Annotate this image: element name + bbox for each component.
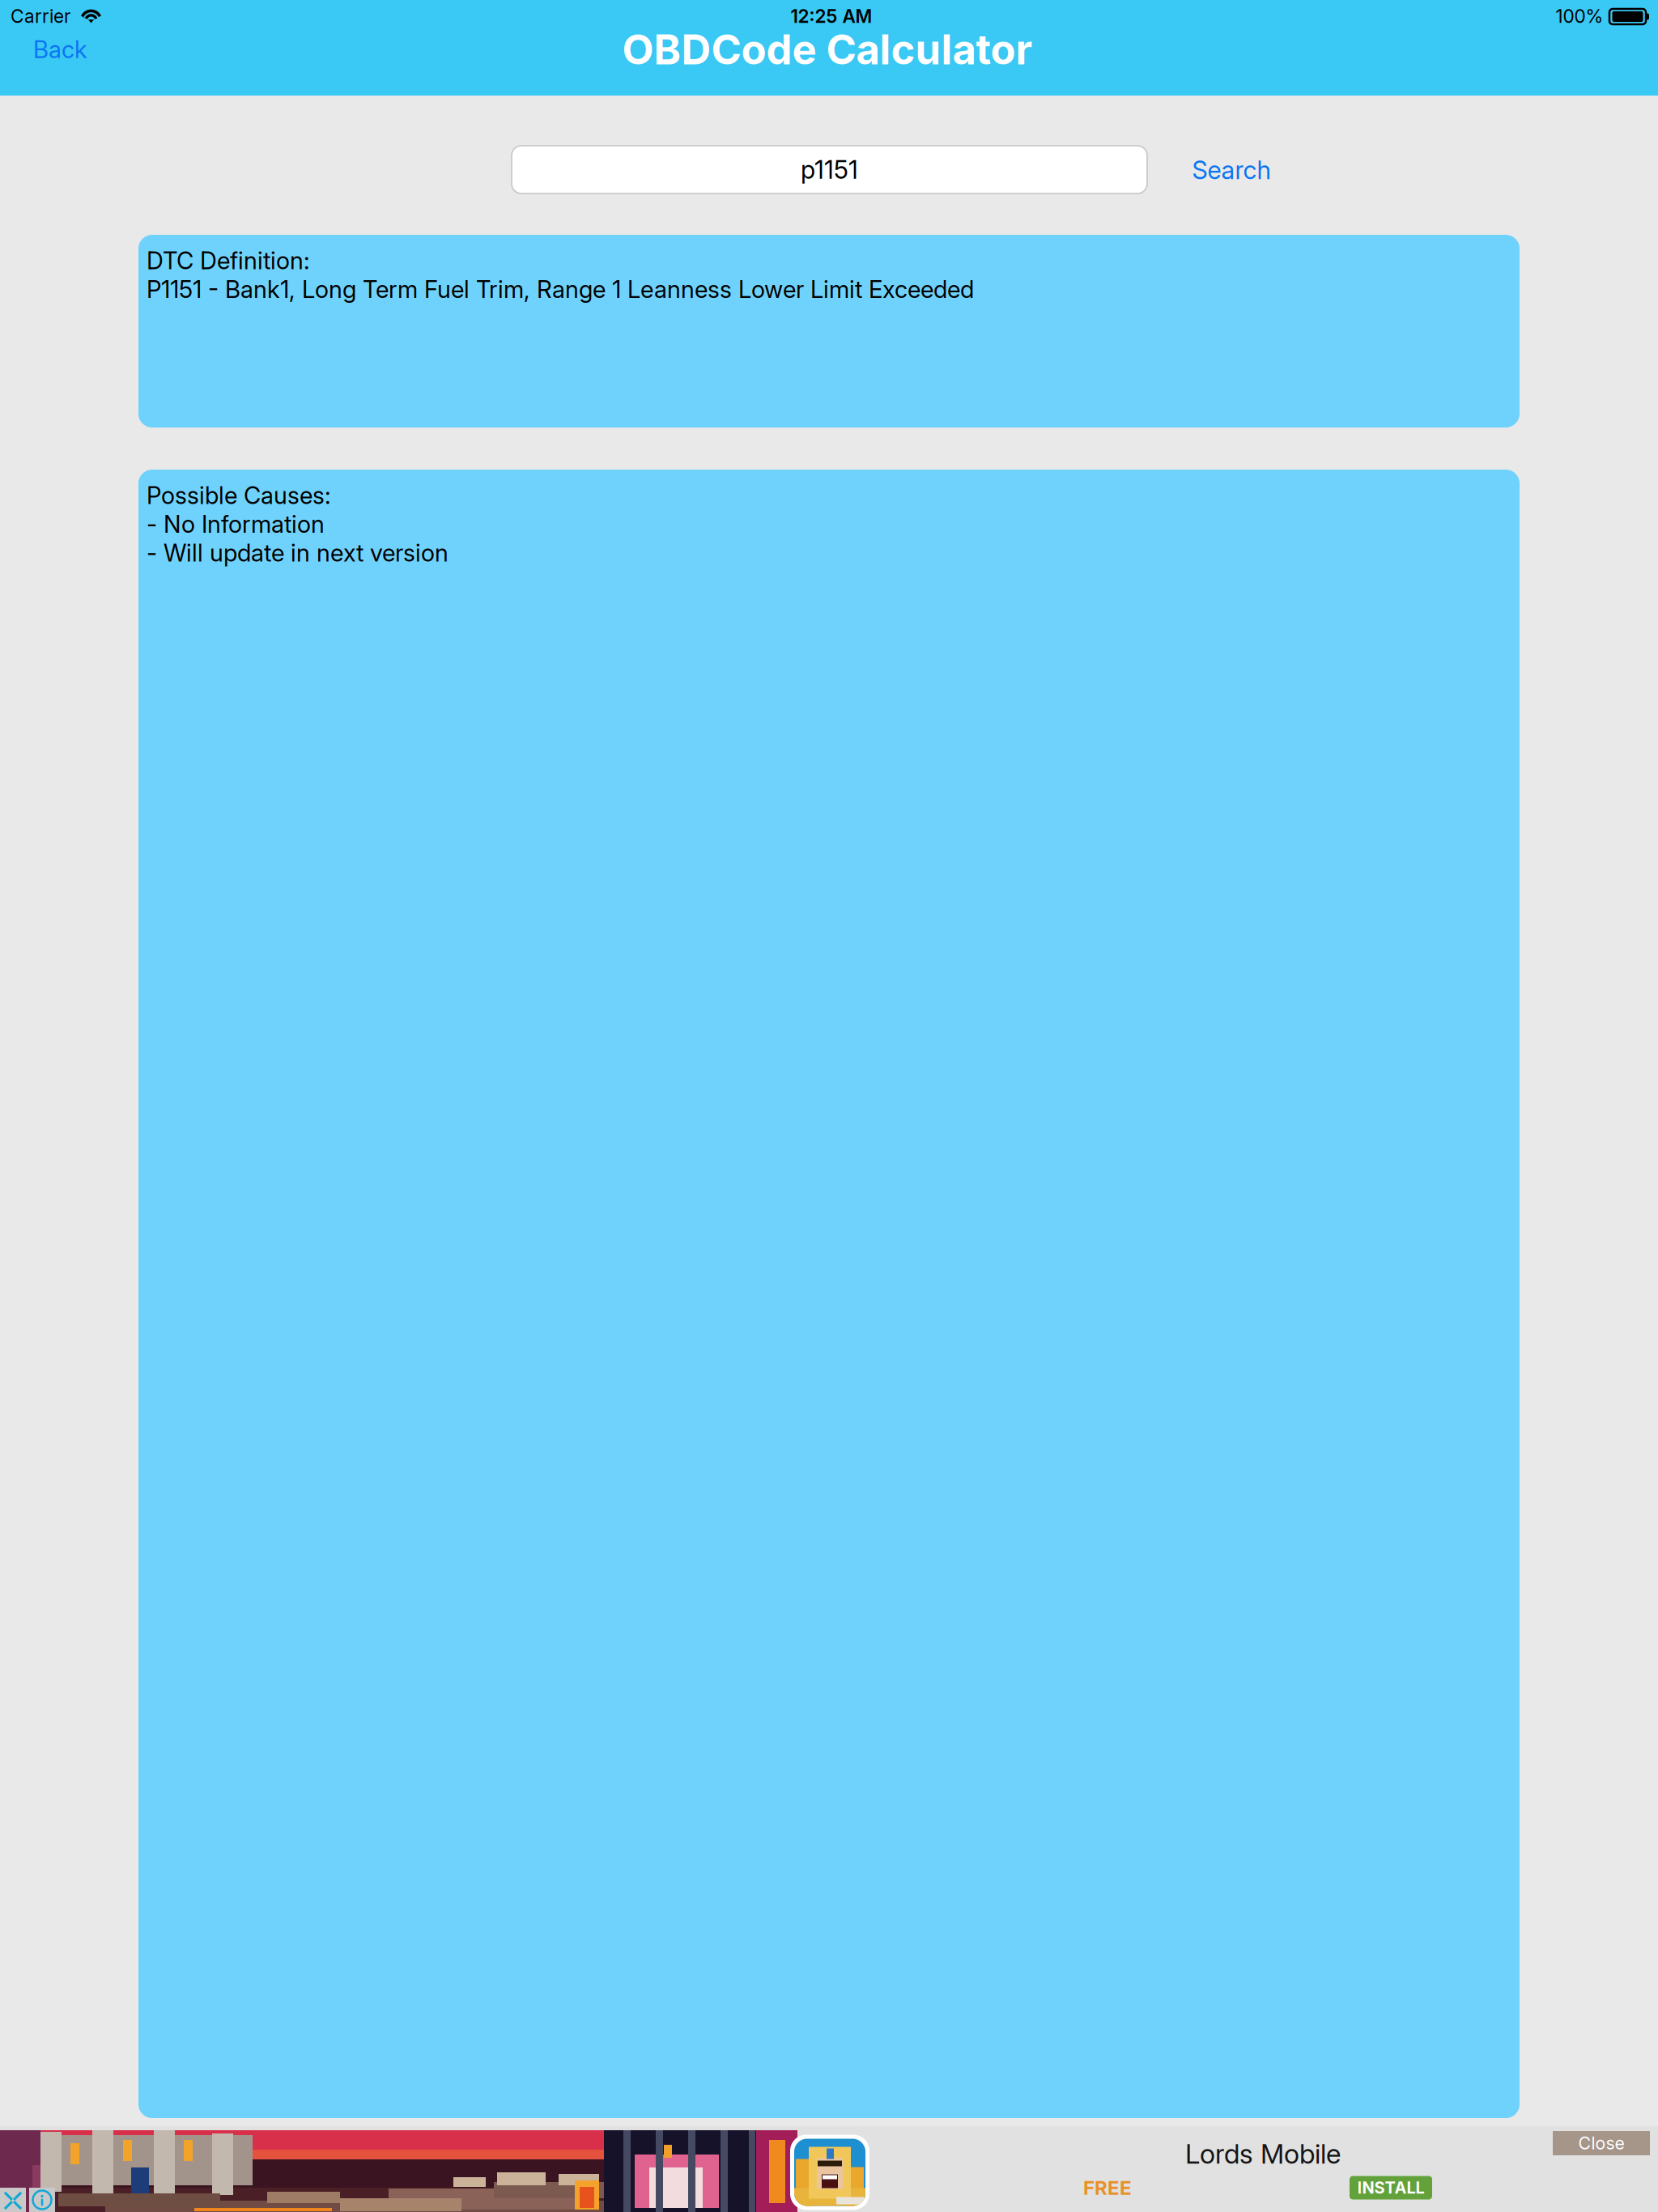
staticText: Carrier [11, 5, 70, 27]
button[interactable]: Search [1163, 146, 1300, 194]
staticText: p1151 [801, 155, 858, 185]
staticText: Possible Causes: [147, 481, 331, 510]
button[interactable]: Back [33, 27, 138, 72]
staticText: INSTALL [1357, 2178, 1424, 2198]
staticText: Back [33, 35, 87, 64]
button[interactable]: Dismiss ad [0, 2188, 26, 2212]
staticText: OBDCode Calculator [622, 25, 1033, 74]
staticText: P1151 - Bank1, Long Term Fuel Trim, Rang… [147, 275, 974, 304]
button[interactable]: Close [1553, 2131, 1650, 2155]
button[interactable] [0, 2130, 797, 2212]
staticText: FREE [1083, 2176, 1132, 2199]
staticText: - Will update in next version [147, 538, 449, 567]
button[interactable]: INSTALL [1350, 2176, 1432, 2199]
button[interactable]: Ad information [29, 2188, 55, 2212]
staticText: Search [1192, 155, 1271, 185]
staticText: 12:25 AM [791, 5, 872, 27]
staticText: 100% [1556, 5, 1603, 27]
staticText: Close [1578, 2133, 1624, 2154]
staticText: DTC Definition: [147, 246, 310, 275]
staticText: - No Information [147, 510, 325, 538]
staticText: Lords Mobile [1185, 2137, 1341, 2170]
